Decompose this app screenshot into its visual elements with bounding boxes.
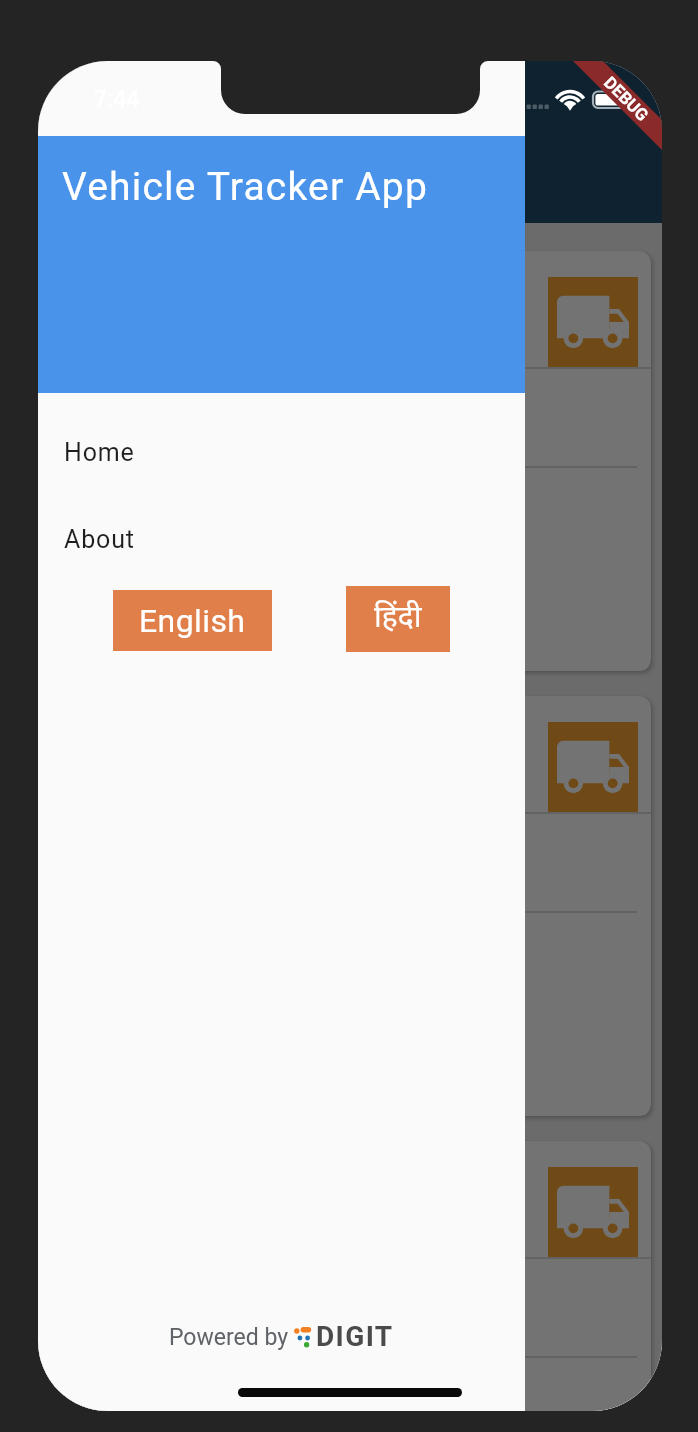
button[interactable]: हिंदी: [346, 586, 450, 652]
button[interactable]: Vehicle No: [54, 696, 651, 1116]
staticText: हिंदी: [374, 600, 422, 639]
staticText: Powered by: [169, 1324, 289, 1351]
staticText: About: [64, 525, 135, 554]
button[interactable]: About: [38, 521, 525, 557]
staticText: Home: [64, 438, 135, 467]
button[interactable]: Vehicle No: [54, 251, 651, 671]
button[interactable]: Track vehicle: [548, 277, 638, 367]
button[interactable]: Track vehicle: [548, 1167, 638, 1257]
staticText: English: [139, 602, 246, 640]
staticText: DEBUG: [600, 72, 653, 125]
button[interactable]: English: [113, 590, 272, 651]
button[interactable]: Vehicle No: [54, 1141, 651, 1411]
staticText: DIGIT: [316, 1320, 394, 1353]
staticText: Vehicle Tracker App: [62, 164, 429, 210]
button[interactable]: Home: [38, 434, 525, 470]
button[interactable]: Track vehicle: [548, 722, 638, 812]
